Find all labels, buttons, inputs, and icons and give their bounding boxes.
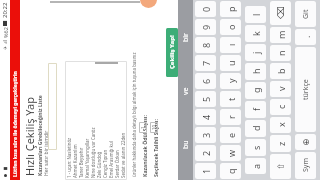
button[interactable]: e (220, 127, 241, 143)
button[interactable]: y (220, 73, 241, 89)
button[interactable]: 2 (195, 145, 216, 161)
button[interactable]: n (270, 45, 291, 61)
staticText: ⌫ (276, 6, 286, 19)
button[interactable]: d (245, 120, 266, 137)
staticText: 3 (200, 132, 212, 138)
staticText: y (225, 78, 237, 83)
staticText: türkçe (301, 79, 311, 100)
button[interactable]: w (220, 145, 241, 161)
button[interactable]: f (245, 101, 266, 118)
staticText: p (225, 6, 237, 12)
staticText: Cengiz Tıpran (102, 149, 108, 178)
staticText: bu (181, 140, 191, 149)
staticText: Kazananları Girebileceğiniz Liste (37, 95, 44, 176)
button[interactable]: k (245, 25, 266, 42)
button[interactable]: 4 (195, 109, 216, 125)
button[interactable]: 7 (195, 55, 216, 71)
button[interactable]: 9 (195, 19, 216, 35)
button[interactable]: türkçe (295, 47, 316, 132)
staticText: f (250, 107, 262, 111)
staticText: Nine dostluğu var Canöz (90, 127, 96, 178)
staticText: Seçilecek Talihli Sayısı: (152, 119, 159, 177)
button[interactable]: 1 (139, 122, 147, 133)
button[interactable]: . (295, 29, 316, 45)
staticText: 1 - uçan: Nasletinöz (66, 137, 72, 178)
staticText: Serdar Özkan (114, 150, 120, 178)
staticText: 1 (140, 126, 146, 129)
button[interactable]: g (245, 82, 266, 99)
staticText: g (250, 87, 262, 93)
staticText: Lütfen kısa süre ile ödemeyi gerçekleşti… (12, 71, 19, 177)
button[interactable]: 6 (195, 73, 216, 89)
button[interactable]: o (220, 19, 241, 35)
button[interactable] (48, 63, 57, 150)
staticText: 4 (200, 114, 212, 120)
staticText: z (275, 141, 287, 146)
staticText: b (275, 68, 287, 74)
staticText: Çekiliş Yap! (168, 35, 176, 69)
staticText: w (225, 149, 237, 157)
button[interactable]: ⌫ (270, 1, 291, 25)
button[interactable]: ⇧ (270, 154, 291, 179)
staticText: j (250, 51, 262, 54)
button[interactable]: h (245, 63, 266, 80)
staticText: Her satır bir isimdir (43, 130, 50, 176)
button[interactable]: q (220, 163, 241, 179)
staticText: ✈ (2, 45, 8, 50)
button[interactable]: Profile (140, 0, 157, 8)
staticText: v (275, 86, 287, 91)
button[interactable]: 8 (195, 37, 216, 53)
staticText: q (225, 168, 237, 174)
staticText: ürünler hakkında daha detaylı bılgı alma… (131, 52, 137, 177)
button[interactable]: ı (220, 37, 241, 53)
button[interactable]: s (245, 139, 266, 156)
staticText: Sedat ve alanın 22den (120, 132, 126, 178)
staticText: ı (225, 43, 237, 46)
button[interactable]: 5 (195, 91, 216, 107)
staticText: bir (181, 32, 191, 42)
staticText: l (250, 13, 262, 16)
button[interactable]: ⊕ (295, 134, 316, 150)
button[interactable]: Sym (295, 152, 316, 179)
staticText: h (250, 68, 262, 74)
button[interactable]: c (270, 99, 291, 115)
button[interactable]: Çekiliş Yap! (166, 28, 178, 77)
button[interactable]: 0 (195, 1, 216, 17)
button[interactable]: l (245, 6, 266, 23)
button[interactable]: 10 (150, 122, 158, 133)
button[interactable]: t (220, 91, 241, 107)
button[interactable]: v (270, 81, 291, 97)
staticText: 0 (200, 6, 212, 12)
staticText: m (275, 30, 287, 39)
button[interactable]: 1 - uçan: Nasletinöz (65, 61, 127, 180)
button[interactable]: x (270, 117, 291, 133)
staticText: e (225, 132, 237, 138)
button[interactable]: 3 (195, 127, 216, 143)
button[interactable]: p (220, 1, 241, 17)
staticText: k (250, 31, 262, 36)
staticText: Hızlı Çekiliş Yap (22, 97, 37, 176)
button[interactable]: 1 (195, 163, 216, 179)
staticText: 2 (200, 150, 212, 156)
button[interactable]: u (220, 55, 241, 71)
button[interactable]: a (245, 158, 266, 174)
staticText: ve (181, 87, 191, 95)
button[interactable]: Git (295, 1, 316, 27)
button[interactable]: m (270, 27, 291, 43)
staticText: Kemal Yaşarıngıllar (84, 138, 90, 178)
staticText: Taner Beyşehır (78, 147, 84, 178)
staticText: Git (301, 9, 311, 19)
staticText: ⇧ (276, 162, 286, 170)
staticText: Ahmet Kazanlım (72, 144, 78, 178)
staticText: Kazanılacak Ödül Sayısı: (141, 115, 148, 177)
staticText: o (225, 24, 237, 30)
staticText: 5 (200, 96, 212, 102)
staticText: 9 (200, 24, 212, 30)
staticText: Zekı Gündoğ (96, 151, 102, 178)
button[interactable]: z (270, 135, 291, 152)
button[interactable]: r (220, 109, 241, 125)
button[interactable]: j (245, 44, 266, 61)
button[interactable]: b (270, 63, 291, 79)
staticText: n (275, 50, 287, 56)
